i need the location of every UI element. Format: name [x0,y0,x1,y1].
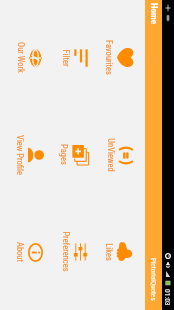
staticText: Filter [61,49,71,67]
button[interactable]: Preferences [52,203,97,300]
button[interactable]: View Profile [7,106,52,203]
staticText: Preferences [61,231,71,272]
staticText: UnViewed [106,138,116,172]
staticText: Likes [104,243,114,261]
staticText: PictorialQuotes [149,258,157,301]
staticText: Pages [59,144,69,165]
button[interactable]: Likes [97,203,142,300]
button[interactable]: UnViewed [97,106,142,203]
button[interactable]: Filter [52,9,97,106]
staticText: Favourites [104,40,114,75]
button[interactable]: About [7,203,52,300]
staticText: 01:03 [163,289,172,306]
button[interactable]: Favourites [97,9,142,106]
button[interactable]: Home [145,0,162,27]
button[interactable]: Our Work [7,9,52,106]
staticText: View Profile [15,135,25,175]
staticText: Home [148,3,159,24]
staticText: Our Work [16,42,26,73]
button[interactable]: Pages [52,106,97,203]
staticText: About [15,242,25,262]
